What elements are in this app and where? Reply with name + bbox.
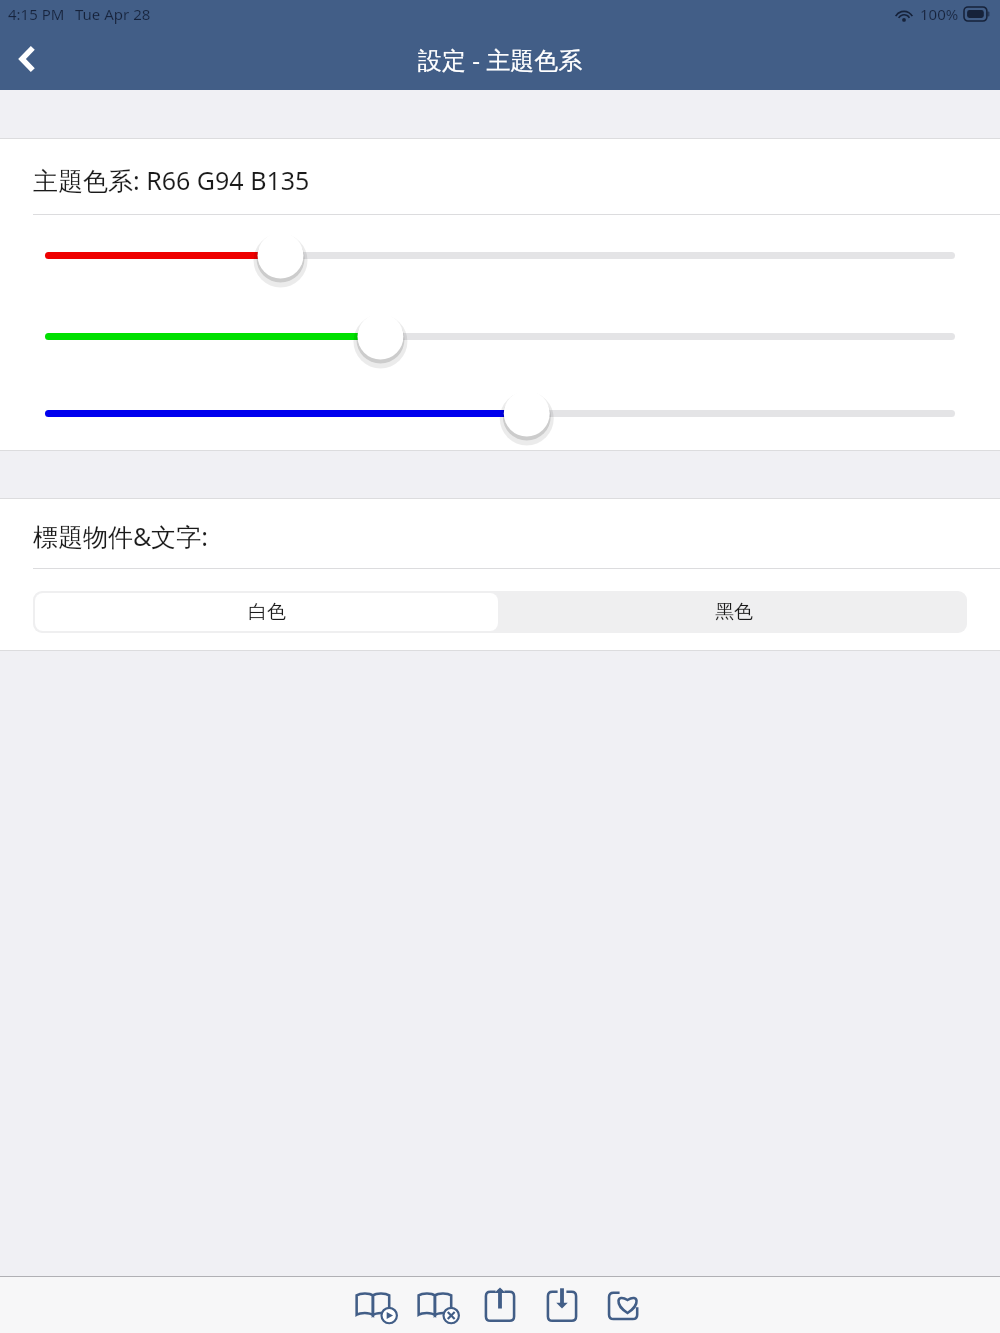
button[interactable]: Download <box>531 1279 593 1331</box>
staticText: 標題物件&文字: <box>33 519 209 553</box>
button[interactable]: 白色 <box>35 593 498 631</box>
button[interactable]: Blue value <box>0 377 1000 450</box>
button[interactable]: Close book <box>407 1279 469 1331</box>
staticText: Tue Apr 28 <box>75 4 151 24</box>
button[interactable]: 黑色 <box>500 591 967 633</box>
button[interactable]: Red value <box>0 215 1000 296</box>
staticText: 100% <box>920 4 959 24</box>
staticText: 主題色系: R66 G94 B135 <box>33 163 310 197</box>
staticText: 設定 - 主題色系 <box>418 43 583 76</box>
button[interactable]: Favorite <box>593 1279 655 1331</box>
button[interactable]: Play book <box>345 1279 407 1331</box>
button[interactable]: Back <box>0 31 56 87</box>
staticText: 白色 <box>248 600 286 624</box>
button[interactable]: Share <box>469 1279 531 1331</box>
button[interactable]: Green value <box>0 296 1000 377</box>
staticText: 4:15 PM <box>8 4 65 24</box>
staticText: 黑色 <box>715 600 753 624</box>
